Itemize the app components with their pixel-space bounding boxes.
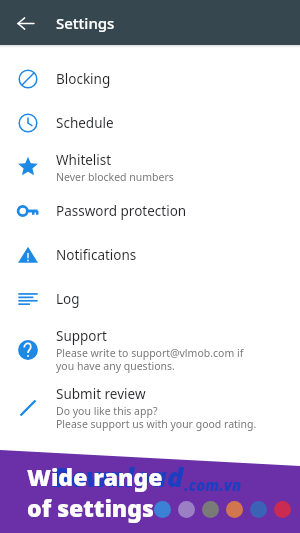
button[interactable]: Schedule xyxy=(0,101,300,145)
staticText: Log xyxy=(56,290,80,308)
button[interactable]: Blocking xyxy=(0,57,300,101)
staticText: Notifications xyxy=(56,246,137,264)
button[interactable]: Whitelist xyxy=(0,145,300,189)
staticText: Support xyxy=(56,327,107,345)
button[interactable]: Back xyxy=(11,9,39,37)
staticText: of settings xyxy=(27,492,154,523)
staticText: Blocking xyxy=(56,70,111,88)
staticText: .com.vn xyxy=(184,475,242,495)
staticText: Please write to support@vlmob.com if you… xyxy=(56,346,244,373)
staticText: Do you like this app? Please support us … xyxy=(56,404,257,431)
button[interactable]: Support xyxy=(0,321,300,379)
button[interactable]: Log xyxy=(0,277,300,321)
staticText: Submit review xyxy=(56,385,146,403)
staticText: Password protection xyxy=(56,202,187,220)
staticText: Wide range xyxy=(27,461,163,492)
staticText: Never blocked numbers xyxy=(56,170,174,184)
staticText: Download xyxy=(52,458,184,495)
button[interactable]: Notifications xyxy=(0,233,300,277)
staticText: Settings xyxy=(56,13,115,33)
staticText: Whitelist xyxy=(56,151,112,169)
button[interactable]: Submit review xyxy=(0,379,300,437)
button[interactable]: Password protection xyxy=(0,189,300,233)
staticText: Schedule xyxy=(56,114,114,132)
